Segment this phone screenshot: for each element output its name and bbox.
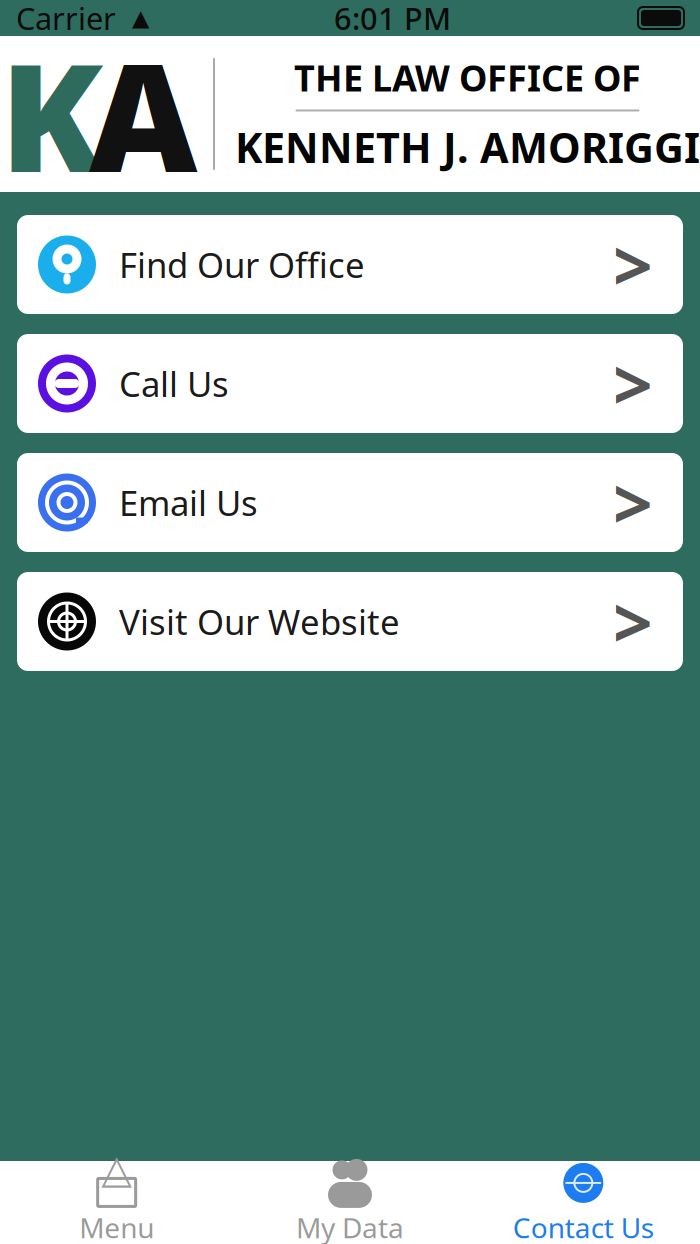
staticText: △	[101, 1146, 132, 1192]
button[interactable]: My Data	[233, 1161, 467, 1244]
button[interactable]: △	[0, 1161, 233, 1244]
staticText: >	[613, 575, 653, 668]
staticText: Find Our Office	[119, 241, 365, 287]
staticText: Visit Our Website	[119, 598, 400, 644]
staticText: Call Us	[119, 360, 229, 406]
staticText: 6:01 PM	[334, 0, 451, 38]
staticText: >	[613, 337, 653, 430]
staticText: >	[613, 456, 653, 549]
staticText: ▲	[116, 5, 149, 31]
staticText: My Data	[296, 1209, 404, 1244]
button[interactable]: Email Us	[17, 453, 683, 552]
staticText: >	[613, 218, 653, 311]
staticText: THE LAW OFFICE OF	[294, 54, 641, 101]
staticText: K	[0, 15, 103, 213]
staticText: Email Us	[119, 479, 258, 525]
staticText: Carrier	[16, 0, 116, 38]
button[interactable]: Call Us	[17, 334, 683, 433]
staticText: Menu	[79, 1209, 154, 1244]
staticText: Contact Us	[513, 1209, 654, 1244]
button[interactable]: Visit Our Website	[17, 572, 683, 671]
button[interactable]: Contact Us	[467, 1161, 700, 1244]
button[interactable]: Find Our Office	[17, 215, 683, 314]
staticText: A	[89, 15, 197, 213]
staticText: KENNETH J. AMORIGGI	[235, 119, 700, 174]
